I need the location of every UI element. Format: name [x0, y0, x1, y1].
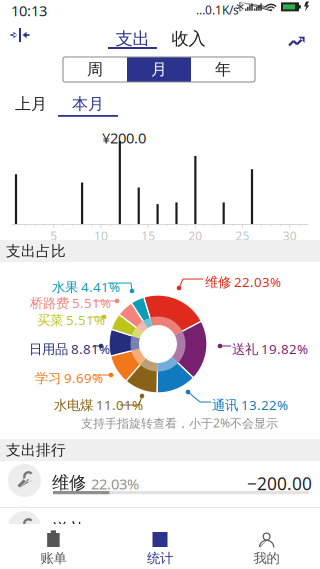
- staticText: 支出占比: [6, 242, 66, 260]
- staticText: 水果 4.41%: [52, 278, 120, 296]
- staticText: 5: [50, 228, 57, 244]
- staticText: 我的: [254, 550, 280, 566]
- staticText: 支出: [115, 28, 149, 49]
- staticText: 送礼: [52, 519, 86, 540]
- staticText: 账单: [40, 550, 66, 566]
- staticText: 10:13: [11, 1, 47, 20]
- staticText: 25: [236, 228, 250, 244]
- button[interactable]: 上月: [1, 90, 61, 117]
- staticText: …0.1K/s: [196, 2, 239, 18]
- button[interactable]: Collapse: [0, 21, 40, 49]
- button[interactable]: 账单: [0, 524, 107, 569]
- staticText: 维修 22.03%: [205, 273, 281, 291]
- staticText: 送礼 19.82%: [232, 340, 308, 358]
- staticText: 月: [151, 60, 167, 79]
- staticText: 买菜 5.51%: [37, 311, 105, 329]
- staticText: 本月: [72, 94, 104, 114]
- staticText: 上月: [15, 94, 47, 114]
- staticText: 支出排行: [6, 441, 66, 459]
- staticText: 30: [283, 228, 297, 244]
- staticText: 通讯 13.22%: [212, 396, 288, 414]
- button[interactable]: 周: [63, 57, 127, 82]
- staticText: 统计: [147, 550, 173, 566]
- button[interactable]: 支出: [108, 26, 157, 51]
- staticText: 22.03%: [91, 474, 139, 493]
- staticText: 周: [87, 60, 103, 79]
- button[interactable]: 统计: [107, 524, 213, 569]
- staticText: 收入: [171, 28, 205, 49]
- staticText: −200.00: [247, 472, 312, 495]
- button[interactable]: 本月: [58, 90, 118, 117]
- staticText: 10: [94, 228, 108, 244]
- staticText: 学习 9.69%: [35, 369, 103, 387]
- staticText: 水电煤 11.01%: [54, 396, 143, 414]
- staticText: 年: [215, 60, 231, 79]
- staticText: 15: [141, 228, 155, 244]
- button[interactable]: 收入: [164, 26, 213, 51]
- staticText: 日用品 8.81%: [29, 340, 110, 358]
- button[interactable]: Trend chart: [288, 27, 314, 47]
- staticText: ¥200.0: [102, 128, 146, 147]
- staticText: −180.00: [247, 519, 312, 542]
- button[interactable]: 年: [191, 57, 255, 82]
- staticText: 维修: [52, 472, 86, 493]
- staticText: 支持手指旋转查看，小于2%不会显示: [81, 415, 278, 431]
- staticText: 桥路费 5.51%: [30, 294, 111, 312]
- button[interactable]: 我的: [213, 524, 320, 569]
- button[interactable]: 送礼: [0, 508, 320, 554]
- button[interactable]: 月: [127, 57, 191, 82]
- staticText: 20: [188, 228, 202, 244]
- button[interactable]: 维修: [0, 461, 320, 507]
